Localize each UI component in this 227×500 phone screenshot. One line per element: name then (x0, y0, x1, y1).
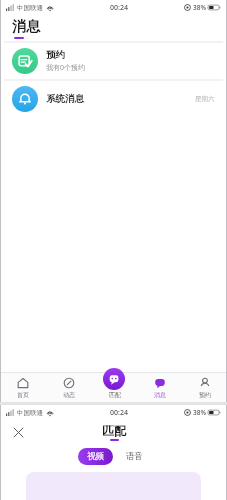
staticText: 匹配 (102, 423, 126, 438)
button[interactable]: 消息 (137, 372, 182, 402)
staticText: 预约 (199, 391, 211, 399)
staticText: 匹配 (109, 391, 121, 399)
button[interactable]: 关闭 (10, 424, 26, 440)
staticText: 语音 (126, 451, 143, 462)
staticText: 00:24 (110, 408, 128, 418)
staticText: 系统消息 (46, 93, 84, 105)
staticText: 消息 (154, 391, 166, 399)
staticText: 中国联通 (17, 409, 43, 417)
button[interactable]: 预约 (4, 43, 223, 79)
button[interactable]: 系统消息 (4, 81, 223, 117)
staticText: 动态 (63, 391, 75, 399)
staticText: 中国联通 (17, 4, 43, 12)
staticText: 视频 (87, 451, 104, 462)
staticText: 38% (193, 3, 206, 12)
staticText: 消息 (12, 18, 40, 36)
button[interactable]: 动态 (46, 372, 92, 402)
staticText: 预约 (46, 49, 65, 61)
button[interactable]: 匹配 (103, 368, 125, 390)
button[interactable]: 语音 (120, 448, 149, 465)
button[interactable]: 首页 (0, 372, 46, 402)
button[interactable]: 匹配 (92, 372, 137, 402)
staticText: 首页 (17, 391, 29, 399)
staticText: 38% (193, 408, 206, 417)
staticText: 星期六 (195, 95, 215, 103)
button[interactable]: 预约 (182, 372, 227, 402)
staticText: 00:24 (110, 3, 128, 13)
staticText: 我有0个预约 (46, 63, 86, 73)
button[interactable]: 视频 (78, 448, 113, 465)
